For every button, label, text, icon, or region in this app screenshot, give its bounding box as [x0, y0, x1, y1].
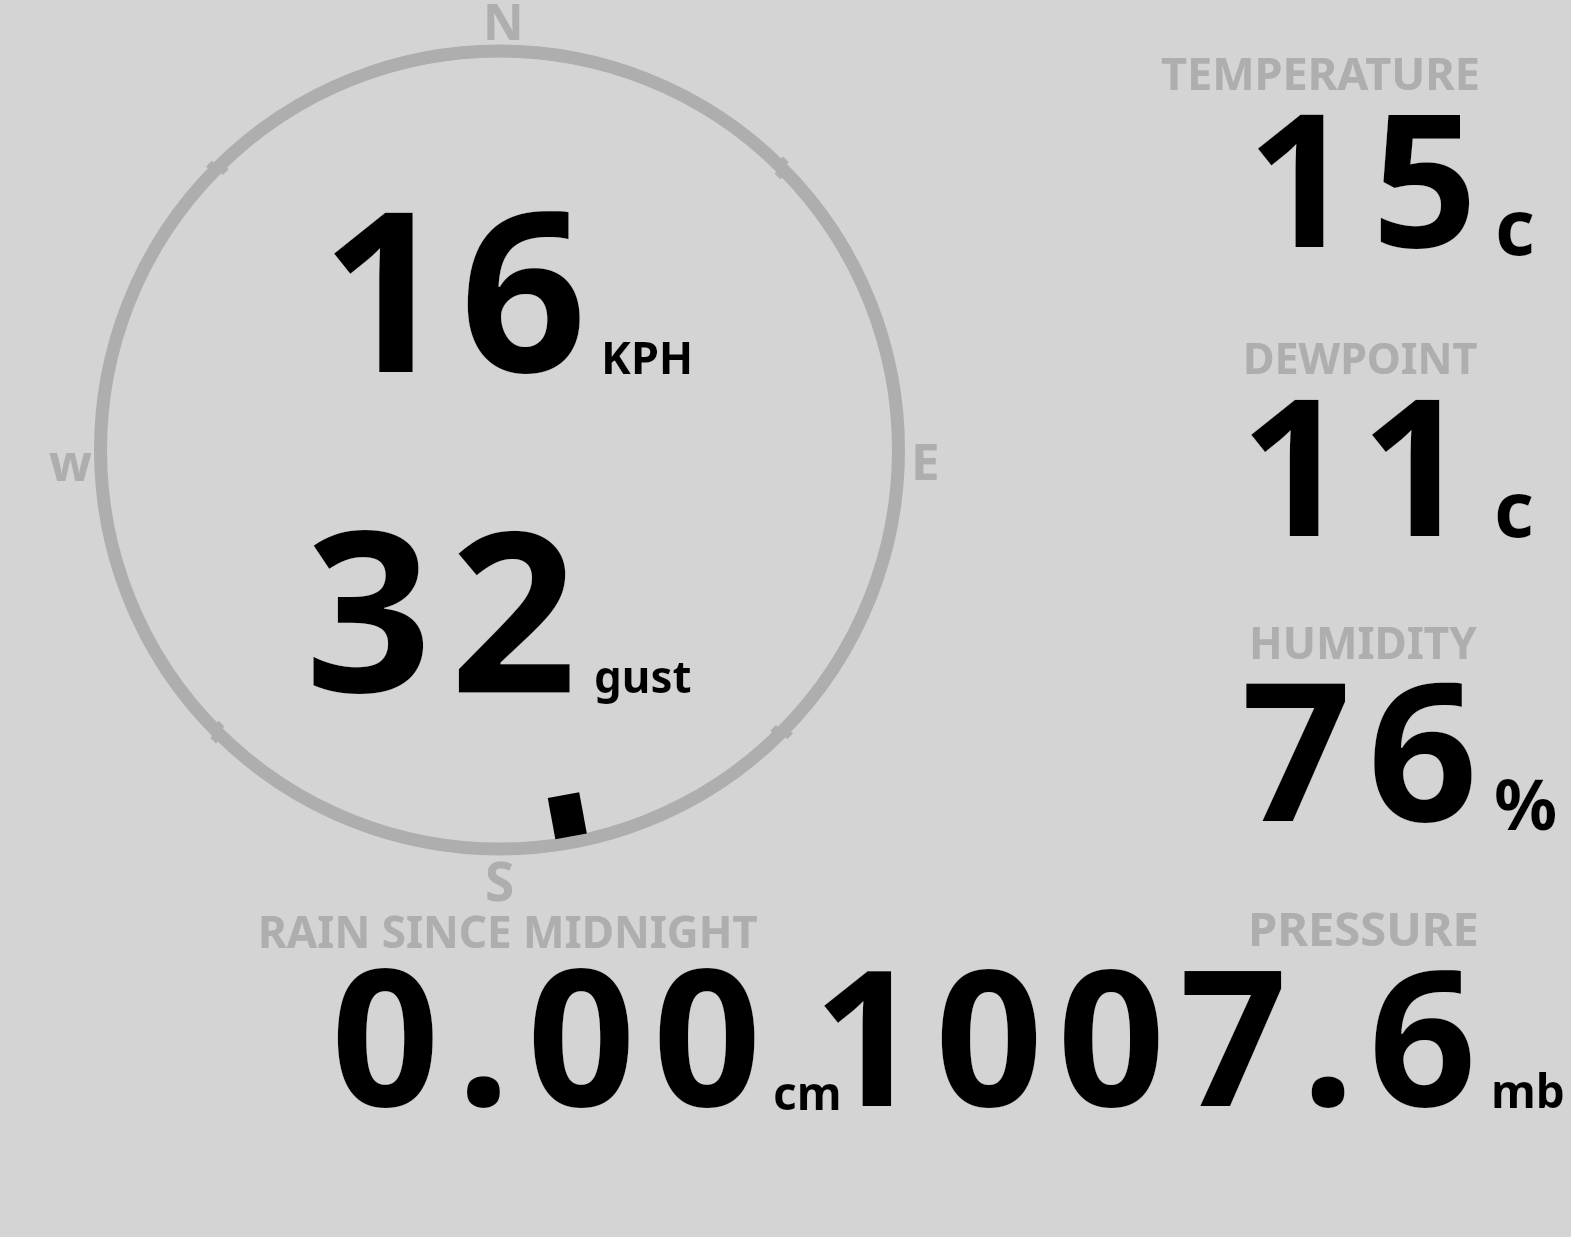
staticText: gust	[594, 646, 692, 706]
staticText: c	[1494, 455, 1534, 560]
staticText: cm	[773, 1061, 842, 1124]
staticText: S	[485, 844, 515, 916]
staticText: c	[1495, 173, 1535, 278]
staticText: 32	[305, 455, 595, 757]
staticText: 0.00	[331, 903, 779, 1162]
staticText: E	[911, 425, 940, 494]
button[interactable]: Wind direction and speed	[95, 45, 905, 855]
button[interactable]: Rain since midnight 0.00 cm	[250, 895, 850, 1125]
button[interactable]: Temperature 15 c	[1150, 40, 1571, 265]
button[interactable]: Humidity 76 percent	[1150, 608, 1571, 833]
staticText: %	[1494, 755, 1558, 850]
staticText: KPH	[601, 326, 694, 387]
staticText: RAIN SINCE MIDNIGHT	[258, 901, 758, 961]
staticText: HUMIDITY	[1249, 612, 1477, 672]
staticText: w	[49, 428, 92, 496]
staticText: DEWPOINT	[1243, 328, 1478, 387]
other: Wind direction dial	[0, 0, 1571, 1237]
button[interactable]: Dewpoint 11 c	[1150, 325, 1571, 550]
staticText: 15	[1247, 49, 1497, 301]
staticText: TEMPERATURE	[1161, 42, 1480, 103]
staticText: PRESSURE	[1248, 896, 1479, 960]
staticText: 16	[321, 135, 599, 437]
staticText: 1007.6	[813, 904, 1491, 1161]
staticText: mb	[1491, 1059, 1565, 1122]
button[interactable]: Pressure 1007.6 mb	[1150, 895, 1571, 1125]
staticText: 76	[1241, 615, 1494, 878]
staticText: N	[483, 0, 524, 55]
staticText: 11	[1240, 333, 1482, 592]
